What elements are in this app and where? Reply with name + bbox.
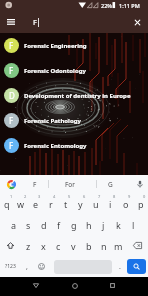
staticText: F	[9, 140, 14, 151]
button[interactable]: F	[22, 175, 48, 193]
staticText: 7	[98, 194, 101, 199]
staticText: 22%	[101, 2, 112, 9]
button[interactable]: r	[43, 193, 58, 214]
staticText: e	[33, 198, 39, 210]
staticText: Development of dentistry in Europe	[24, 92, 131, 100]
button[interactable]: F	[0, 33, 148, 58]
button[interactable]: k	[111, 214, 126, 235]
button[interactable]: u	[88, 193, 103, 214]
staticText: u	[93, 198, 99, 210]
button[interactable]: Recents	[100, 276, 125, 295]
button[interactable]: j	[96, 214, 111, 235]
button[interactable]: q	[0, 193, 14, 214]
button[interactable]: Voice input	[132, 175, 148, 193]
button[interactable]: F	[0, 133, 148, 158]
staticText: Forensic Pathology	[24, 117, 81, 125]
staticText: f	[57, 219, 61, 231]
staticText: l	[132, 219, 135, 231]
staticText: 3	[38, 194, 41, 199]
staticText: z	[26, 240, 31, 252]
staticText: m	[114, 240, 123, 252]
button[interactable]: F	[0, 108, 148, 133]
staticText: t	[64, 198, 68, 210]
button[interactable]: w	[14, 193, 28, 214]
button[interactable]: x	[36, 235, 51, 256]
staticText: For	[65, 180, 75, 189]
button[interactable]: z	[21, 235, 36, 256]
button[interactable]: Shift	[0, 235, 21, 256]
staticText: v	[71, 240, 76, 252]
staticText: g	[71, 219, 77, 231]
button[interactable]: Back	[23, 276, 48, 295]
button[interactable]: g	[66, 214, 81, 235]
staticText: a	[11, 219, 17, 231]
button[interactable]: o	[118, 193, 133, 214]
button[interactable]: m	[111, 235, 126, 256]
button[interactable]: Emoji	[33, 256, 50, 277]
button[interactable]: For	[58, 175, 82, 193]
staticText: w	[17, 198, 25, 210]
staticText: r	[49, 198, 53, 210]
staticText: p	[138, 198, 144, 210]
button[interactable]: h	[81, 214, 96, 235]
staticText: G	[108, 180, 113, 189]
button[interactable]: Google	[0, 175, 22, 193]
staticText: x	[41, 240, 46, 252]
button[interactable]: e	[28, 193, 43, 214]
button[interactable]: G	[101, 175, 119, 193]
button[interactable]: v	[66, 235, 81, 256]
staticText: j	[102, 219, 105, 231]
staticText: 2	[24, 194, 27, 199]
button[interactable]: .	[113, 256, 127, 277]
staticText: q	[4, 198, 10, 210]
staticText: d	[41, 219, 47, 231]
staticText: ,	[26, 262, 28, 272]
button[interactable]: Home	[62, 276, 87, 295]
staticText: 1:11 PM	[119, 2, 140, 9]
button[interactable]: Search	[127, 259, 146, 274]
button[interactable]: t	[58, 193, 73, 214]
button[interactable]: Close	[126, 11, 148, 33]
button[interactable]: a	[7, 214, 21, 235]
button[interactable]: y	[73, 193, 88, 214]
staticText: y	[78, 198, 83, 210]
button[interactable]: Backspace	[126, 235, 148, 256]
button[interactable]: c	[51, 235, 66, 256]
button[interactable]: ?123	[0, 256, 21, 277]
staticText: o	[123, 198, 129, 210]
staticText: k	[116, 219, 121, 231]
button[interactable]: Menu	[0, 11, 22, 33]
staticText: .	[119, 262, 121, 272]
button[interactable]: f	[51, 214, 66, 235]
button[interactable]: l	[126, 214, 141, 235]
button[interactable]: D	[0, 83, 148, 108]
button[interactable]: b	[81, 235, 96, 256]
staticText: D	[9, 90, 15, 101]
button[interactable]: ,	[21, 256, 33, 277]
button[interactable]: n	[96, 235, 111, 256]
staticText: 9	[128, 194, 131, 199]
staticText: i	[109, 198, 112, 210]
staticText: F	[9, 115, 14, 126]
staticText: F	[33, 17, 37, 27]
staticText: h	[86, 219, 92, 231]
staticText: b	[86, 240, 92, 252]
button[interactable]: d	[36, 214, 51, 235]
staticText: F	[9, 40, 14, 51]
staticText: n	[101, 240, 107, 252]
staticText: 4	[53, 194, 56, 199]
staticText: F	[9, 65, 14, 76]
staticText: 1	[10, 194, 13, 199]
staticText: 5	[68, 194, 71, 199]
staticText: 6	[83, 194, 86, 199]
button[interactable]: i	[103, 193, 118, 214]
staticText: 8	[113, 194, 116, 199]
staticText: c	[56, 240, 61, 252]
button[interactable]: p	[133, 193, 148, 214]
staticText: F	[33, 180, 37, 189]
button[interactable]: s	[21, 214, 36, 235]
button[interactable]: F	[0, 58, 148, 83]
staticText: Forensic Engineering	[24, 42, 87, 50]
staticText: Forensic Odontology	[24, 67, 86, 75]
